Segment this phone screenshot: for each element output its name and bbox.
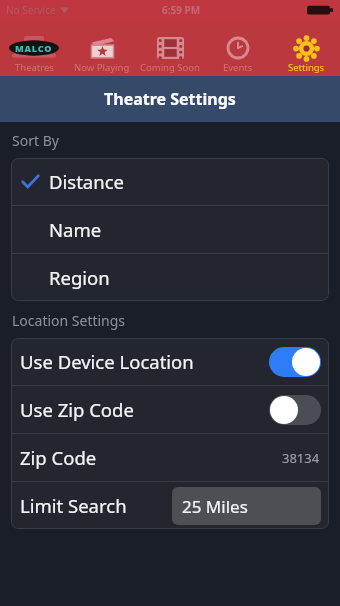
staticText: MALCO (15, 42, 53, 54)
staticText: Coming Soon (140, 61, 200, 74)
button[interactable]: Name (11, 206, 329, 253)
staticText: Limit Search (20, 493, 127, 518)
staticText: Events (223, 61, 253, 74)
button[interactable]: Events (204, 20, 272, 76)
staticText: Zip Code (20, 445, 97, 470)
staticText: Use Zip Code (20, 397, 134, 422)
staticText: Sort By (12, 131, 59, 150)
staticText: 25 Miles (182, 495, 248, 518)
button[interactable]: 25 Miles (172, 487, 321, 525)
staticText: Name (49, 217, 102, 242)
button[interactable]: Distance (11, 158, 329, 205)
staticText: 6:59 PM (162, 3, 201, 17)
button[interactable]: Now Playing (68, 20, 136, 76)
staticText: Settings (288, 61, 325, 74)
staticText: Region (49, 265, 110, 290)
staticText: Now Playing (74, 61, 130, 74)
button[interactable]: Zip Code (20, 434, 320, 481)
staticText: Location Settings (12, 311, 126, 330)
staticText: Theatre Settings (104, 88, 236, 110)
button[interactable]: Coming Soon (136, 20, 204, 76)
button[interactable]: Use Zip Code (20, 386, 321, 433)
staticText: Distance (49, 169, 124, 194)
button[interactable]: Use Device Location (20, 338, 321, 385)
button[interactable]: Settings (272, 20, 340, 76)
button[interactable]: Region (11, 254, 329, 301)
staticText: 38134 (282, 449, 320, 467)
staticText: Theatres (15, 61, 54, 74)
button[interactable]: Theatres (0, 20, 68, 76)
staticText: Use Device Location (20, 349, 194, 374)
staticText: No Service (6, 3, 56, 17)
